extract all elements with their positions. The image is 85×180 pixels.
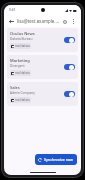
button[interactable]: Toggle account — [64, 37, 75, 43]
staticText: Admin Company — [10, 91, 35, 95]
button[interactable]: Toggle account — [64, 64, 75, 70]
staticText: 9:41 — [9, 8, 16, 12]
staticText: Dakota Bureau — [10, 37, 33, 41]
button[interactable]: mail.dakota — [10, 70, 31, 76]
button[interactable]: Back — [7, 17, 16, 26]
staticText: Marketing — [10, 58, 30, 63]
staticText: mail.dakota — [15, 98, 30, 102]
button[interactable]: Toggle account — [64, 91, 75, 97]
staticText: Divergent — [10, 64, 25, 68]
button[interactable]: Oculus News — [7, 28, 78, 52]
button[interactable]: Sales — [7, 82, 78, 106]
button[interactable]: mail.dakota — [10, 97, 31, 103]
staticText: Sales — [10, 85, 20, 90]
staticText: Synchronize now — [44, 157, 74, 162]
button[interactable]: Settings — [60, 17, 69, 26]
staticText: mail.dakota — [15, 44, 30, 48]
button[interactable]: Synchronize now — [35, 154, 77, 165]
staticText: mail.dakota — [15, 71, 30, 75]
button[interactable]: Marketing — [7, 55, 78, 79]
staticText: lisa@test.example.com — [17, 18, 60, 24]
staticText: Oculus News — [10, 31, 35, 36]
button[interactable]: mail.dakota — [10, 43, 31, 49]
button[interactable]: More options — [69, 17, 78, 26]
